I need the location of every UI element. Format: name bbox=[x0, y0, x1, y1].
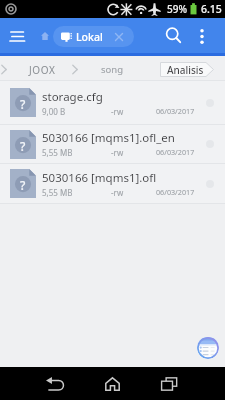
staticText: storage.cfg bbox=[42, 89, 103, 105]
staticText: 5,55 MB bbox=[42, 187, 73, 198]
staticText: 59% bbox=[167, 2, 187, 16]
button[interactable]: Search bbox=[157, 19, 190, 52]
button[interactable]: Home bbox=[95, 367, 129, 400]
staticText: ? bbox=[20, 138, 26, 154]
button[interactable]: JOOX bbox=[29, 63, 56, 77]
staticText: 5,55 MB bbox=[42, 147, 73, 158]
button[interactable]: Floating window bbox=[197, 337, 219, 359]
button[interactable]: song bbox=[101, 63, 124, 76]
button[interactable]: ? bbox=[0, 81, 225, 125]
staticText: 06/03/2017 bbox=[156, 147, 195, 157]
staticText: -rw bbox=[111, 106, 124, 117]
staticText: 5030166 [mqms1].ofl_en bbox=[42, 130, 175, 146]
staticText: song bbox=[101, 63, 124, 76]
button[interactable]: Lokal bbox=[53, 26, 134, 47]
staticText: 6.15 bbox=[201, 2, 222, 16]
staticText: 06/03/2017 bbox=[156, 106, 195, 116]
button[interactable]: Recent apps bbox=[152, 367, 186, 400]
button[interactable]: ? bbox=[0, 125, 225, 164]
staticText: 9,00 B bbox=[42, 106, 66, 117]
button[interactable]: Navigation menu bbox=[8, 23, 26, 49]
staticText: -rw bbox=[111, 187, 124, 198]
staticText: JOOX bbox=[29, 63, 56, 77]
staticText: Analisis bbox=[167, 63, 204, 77]
button[interactable]: More options bbox=[190, 24, 214, 48]
staticText: Lokal bbox=[76, 30, 103, 44]
button[interactable]: Close tab bbox=[111, 29, 127, 45]
staticText: -rw bbox=[111, 147, 124, 158]
button[interactable]: Back bbox=[38, 367, 72, 400]
button[interactable]: Home folder bbox=[37, 26, 53, 46]
staticText: 5030166 [mqms1].ofl bbox=[42, 170, 157, 186]
staticText: 06/03/2017 bbox=[156, 187, 195, 197]
button[interactable]: Analisis bbox=[160, 62, 214, 77]
button[interactable]: ? bbox=[0, 164, 225, 204]
staticText: ? bbox=[20, 177, 26, 193]
staticText: ? bbox=[20, 96, 26, 112]
